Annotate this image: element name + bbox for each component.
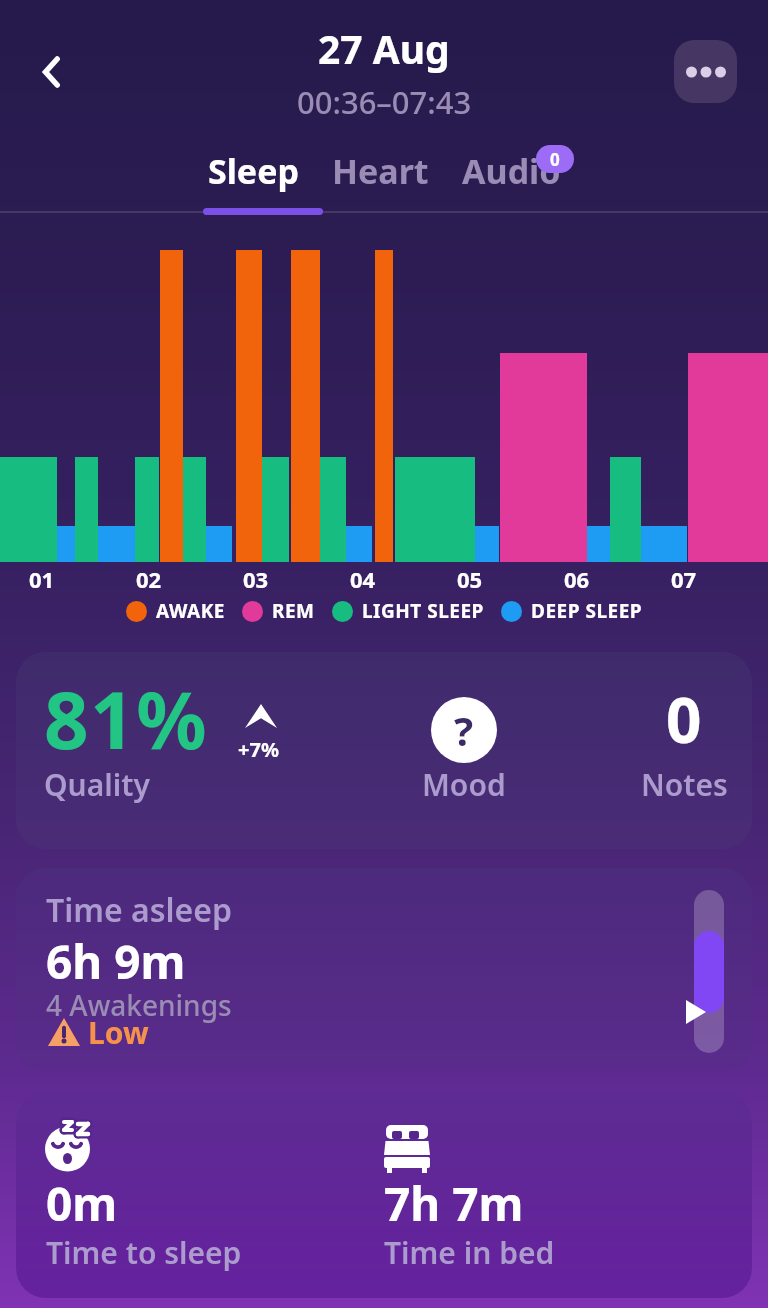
- staticText: Time to sleep: [46, 1232, 242, 1273]
- button[interactable]: ?: [431, 697, 497, 763]
- staticText: Quality: [44, 764, 150, 805]
- staticText: AWAKE: [156, 598, 225, 624]
- staticText: 0m: [46, 1172, 118, 1235]
- staticText: 07: [671, 564, 697, 594]
- staticText: Sleep: [208, 148, 299, 194]
- staticText: Mood: [422, 764, 506, 805]
- staticText: 03: [243, 564, 269, 594]
- staticText: Time asleep: [46, 888, 233, 932]
- button[interactable]: [26, 46, 78, 98]
- staticText: Audio: [462, 148, 561, 194]
- button[interactable]: Time asleep: [16, 868, 752, 1072]
- staticText: 6h 9m: [46, 930, 186, 993]
- staticText: 7h 7m: [384, 1172, 524, 1235]
- button[interactable]: Sleep: [208, 148, 299, 194]
- staticText: 81%: [44, 666, 209, 772]
- staticText: 0: [666, 677, 702, 761]
- staticText: 00:36–07:43: [297, 81, 472, 123]
- staticText: DEEP SLEEP: [531, 598, 643, 624]
- button[interactable]: [674, 40, 737, 103]
- staticText: 06: [564, 564, 590, 594]
- staticText: 04: [350, 564, 376, 594]
- button[interactable]: Heart: [332, 148, 429, 194]
- staticText: 01: [29, 564, 55, 594]
- staticText: LIGHT SLEEP: [362, 598, 484, 624]
- staticText: 02: [136, 564, 162, 594]
- staticText: Heart: [332, 148, 429, 194]
- button[interactable]: 81%: [16, 652, 752, 849]
- staticText: 27 Aug: [318, 22, 450, 75]
- staticText: Time in bed: [384, 1232, 555, 1273]
- staticText: Notes: [641, 764, 728, 805]
- staticText: 05: [457, 564, 483, 594]
- staticText: +7%: [238, 736, 279, 763]
- staticText: 4 Awakenings: [46, 986, 232, 1024]
- staticText: 0: [550, 148, 560, 171]
- button[interactable]: 0m: [16, 1092, 752, 1298]
- button[interactable]: Audio: [462, 148, 561, 194]
- staticText: REM: [272, 598, 315, 624]
- staticText: ?: [454, 703, 474, 757]
- staticText: Low: [88, 1012, 149, 1053]
